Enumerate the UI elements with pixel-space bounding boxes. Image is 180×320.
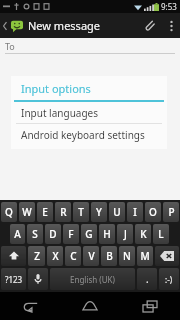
staticText: To	[5, 40, 15, 52]
staticText: S	[32, 227, 38, 241]
staticText: L	[158, 227, 164, 241]
button[interactable]: Emoji	[159, 268, 179, 290]
staticText: .	[146, 272, 149, 286]
staticText: T	[78, 205, 84, 219]
staticText: V	[88, 249, 95, 263]
button[interactable]: Home	[60, 292, 120, 320]
button[interactable]: B	[101, 246, 117, 266]
button[interactable]: Delete	[155, 246, 179, 266]
button[interactable]: Space	[50, 268, 135, 290]
staticText: R	[60, 205, 67, 219]
staticText: Q	[5, 205, 13, 219]
button[interactable]: E	[37, 202, 53, 222]
staticText: B	[106, 249, 113, 263]
staticText: F	[68, 227, 74, 241]
staticText: :-)	[165, 274, 173, 285]
button[interactable]: G	[81, 224, 97, 244]
staticText: New message	[28, 18, 101, 33]
staticText: A	[14, 227, 21, 241]
button[interactable]: M	[137, 246, 153, 266]
staticText: H	[103, 227, 111, 241]
staticText: P	[168, 205, 175, 219]
staticText: D	[49, 227, 57, 241]
button[interactable]: Symbols	[1, 268, 26, 290]
button[interactable]: U	[109, 202, 125, 222]
button[interactable]: Back	[0, 292, 60, 320]
button[interactable]: More options	[162, 13, 180, 38]
button[interactable]: New message	[0, 18, 105, 33]
staticText: Input options	[21, 81, 91, 96]
staticText: M	[140, 249, 150, 263]
button[interactable]: Z	[28, 246, 45, 266]
button[interactable]: Voice input	[28, 268, 48, 290]
button[interactable]: Android keyboard settings	[11, 124, 167, 145]
button[interactable]: S	[27, 224, 43, 244]
button[interactable]: X	[47, 246, 63, 266]
staticText: G	[85, 227, 93, 241]
button[interactable]: K	[135, 224, 151, 244]
staticText: Input languages	[21, 106, 98, 120]
staticText: Z	[34, 249, 40, 263]
button[interactable]: P	[163, 202, 179, 222]
staticText: N	[123, 249, 131, 263]
staticText: I	[133, 205, 137, 219]
button[interactable]: A	[10, 224, 25, 244]
staticText: E	[42, 205, 48, 219]
button[interactable]: N	[119, 246, 135, 266]
button[interactable]: Recent apps	[120, 292, 180, 320]
staticText: Android keyboard settings	[21, 128, 145, 142]
staticText: 9:53	[161, 1, 177, 12]
button[interactable]: Q	[1, 202, 17, 222]
staticText: W	[22, 205, 32, 219]
staticText: C	[70, 249, 77, 263]
staticText: ?123	[5, 274, 23, 285]
button[interactable]: Attach	[136, 13, 162, 38]
staticText: O	[149, 205, 157, 219]
staticText: Y	[96, 205, 102, 219]
button[interactable]: V	[83, 246, 99, 266]
button[interactable]: T	[73, 202, 89, 222]
staticText: J	[124, 227, 127, 241]
button[interactable]: Y	[91, 202, 107, 222]
button[interactable]: I	[127, 202, 143, 222]
button[interactable]: H	[99, 224, 115, 244]
button[interactable]: Shift	[1, 246, 26, 266]
button[interactable]: J	[117, 224, 133, 244]
button[interactable]: D	[45, 224, 61, 244]
button[interactable]: L	[153, 224, 169, 244]
button[interactable]: W	[19, 202, 35, 222]
staticText: English (UK)	[70, 274, 115, 285]
staticText: U	[113, 205, 121, 219]
button[interactable]: R	[55, 202, 71, 222]
button[interactable]: Input languages	[11, 102, 167, 123]
button[interactable]: O	[145, 202, 161, 222]
button[interactable]: Period	[137, 268, 157, 290]
staticText: X	[52, 249, 59, 263]
staticText: K	[140, 227, 147, 241]
button[interactable]: C	[65, 246, 81, 266]
button[interactable]: F	[63, 224, 79, 244]
